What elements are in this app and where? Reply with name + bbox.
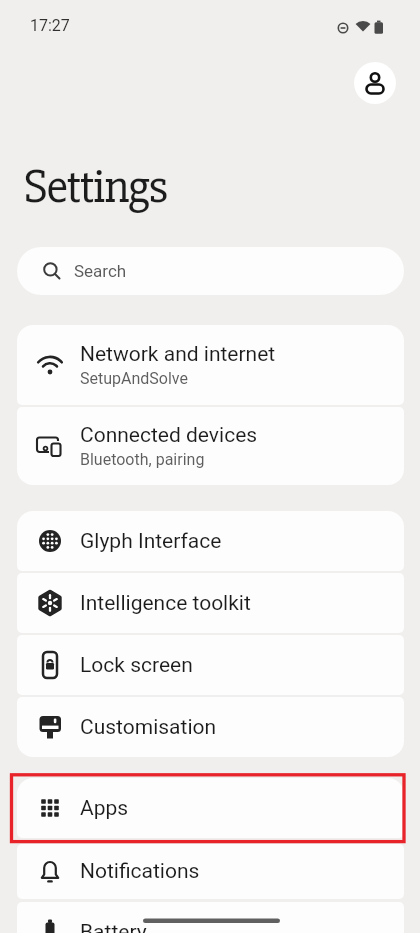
button[interactable]: Network and internet (17, 325, 404, 405)
staticText: Network and internet (80, 342, 276, 367)
staticText: Customisation (80, 715, 217, 740)
button[interactable]: Intelligence toolkit (17, 573, 404, 633)
button[interactable]: Connected devices (17, 407, 404, 485)
staticText: SetupAndSolve (80, 369, 188, 388)
staticText: Notifications (80, 859, 200, 884)
staticText: Settings (24, 157, 168, 217)
staticText: 17:27 (30, 16, 70, 35)
button[interactable]: Glyph Interface (17, 511, 404, 571)
staticText: Glyph Interface (80, 529, 222, 554)
staticText: Apps (80, 796, 129, 821)
staticText: Intelligence toolkit (80, 591, 251, 616)
staticText: Connected devices (80, 423, 258, 448)
staticText: Battery (80, 920, 147, 933)
button[interactable]: Search (17, 247, 404, 295)
button[interactable]: Notifications (17, 844, 404, 899)
button[interactable]: Customisation (17, 697, 404, 757)
staticText: Bluetooth, pairing (80, 450, 205, 469)
staticText: Lock screen (80, 653, 193, 678)
button[interactable]: Lock screen (17, 635, 404, 695)
button[interactable]: Battery (17, 902, 404, 933)
button[interactable]: Apps (17, 778, 404, 838)
button[interactable] (354, 62, 396, 104)
staticText: Search (74, 261, 127, 281)
